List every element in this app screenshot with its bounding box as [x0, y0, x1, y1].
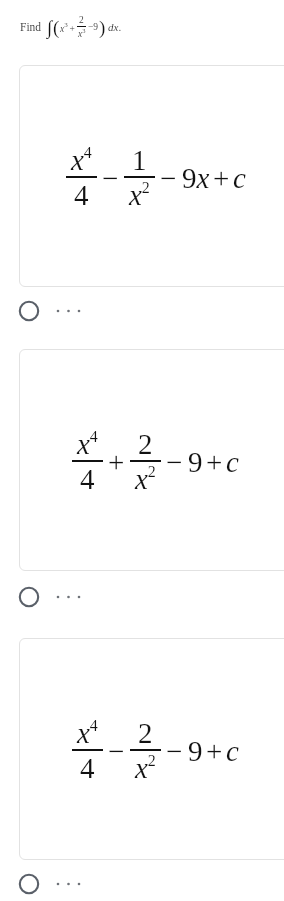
staticText: −: [166, 735, 183, 767]
staticText: x4: [71, 144, 92, 176]
staticText: 2: [79, 15, 84, 26]
staticText: 4: [80, 752, 95, 784]
staticText: x2: [129, 179, 150, 211]
staticText: Find: [20, 21, 42, 34]
staticText: x3: [78, 27, 86, 39]
staticText: 9: [188, 735, 203, 767]
staticText: −9: [86, 22, 99, 33]
button[interactable]: x4: [19, 65, 284, 287]
staticText: (: [53, 17, 60, 38]
staticText: 2: [138, 428, 153, 460]
staticText: −: [108, 735, 125, 767]
staticText: x2: [135, 752, 156, 784]
staticText: x3 +: [60, 21, 77, 34]
staticText: +: [108, 446, 125, 478]
staticText: ): [99, 17, 106, 38]
staticText: −: [102, 162, 119, 194]
staticText: 2: [138, 717, 153, 749]
button[interactable]: [19, 586, 82, 608]
staticText: c: [226, 446, 239, 478]
staticText: x4: [77, 428, 98, 460]
staticText: 4: [74, 179, 89, 211]
staticText: x2: [135, 463, 156, 495]
staticText: x4: [77, 717, 98, 749]
staticText: c: [226, 735, 239, 767]
staticText: 4: [80, 463, 95, 495]
staticText: c: [233, 162, 246, 194]
staticText: 9x: [182, 162, 210, 194]
staticText: +: [213, 162, 230, 194]
staticText: 9: [188, 446, 203, 478]
staticText: +: [206, 446, 223, 478]
staticText: −: [166, 446, 183, 478]
button[interactable]: [19, 873, 82, 895]
staticText: −: [160, 162, 177, 194]
staticText: 1: [132, 144, 147, 176]
staticText: ∫: [47, 17, 53, 38]
button[interactable]: x4: [19, 349, 284, 571]
staticText: +: [206, 735, 223, 767]
staticText: dx.: [108, 21, 122, 33]
button[interactable]: x4: [19, 638, 284, 860]
button[interactable]: [19, 300, 82, 322]
